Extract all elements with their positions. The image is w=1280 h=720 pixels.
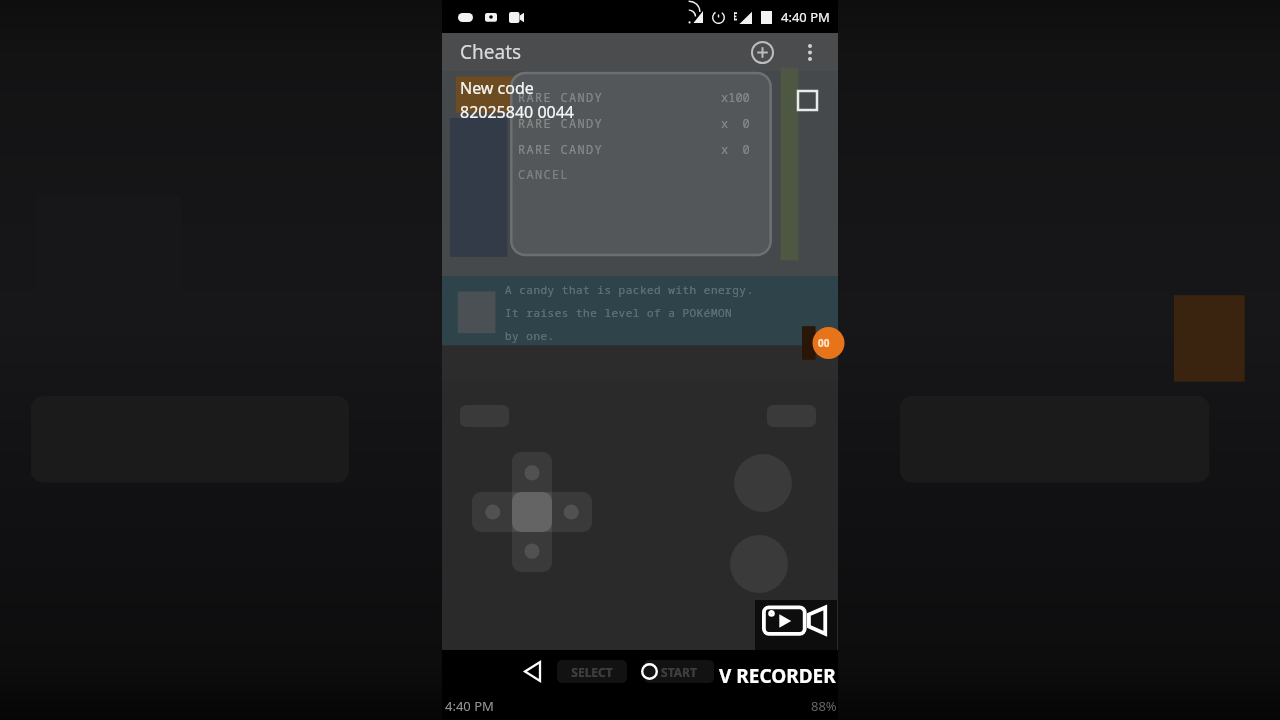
staticText: It raises the level of a POKéMON	[505, 305, 733, 328]
button[interactable]: Add cheat	[746, 36, 778, 68]
button[interactable]: Enable cheat	[790, 83, 824, 117]
staticText: SELECT	[571, 664, 613, 680]
staticText: V RECORDER	[719, 663, 836, 689]
button[interactable]: Back	[512, 651, 552, 691]
staticText: RARE CANDY	[518, 115, 604, 131]
staticText: 88%	[811, 697, 837, 715]
staticText: 82025840 0044	[460, 101, 574, 123]
other: V Recorder	[762, 605, 830, 645]
staticText: RARE CANDY	[518, 89, 604, 105]
button[interactable]: D-pad	[472, 452, 592, 572]
staticText: by one.	[505, 328, 555, 351]
staticText: x100	[721, 89, 750, 105]
staticText: Cheats	[460, 39, 522, 65]
button[interactable]: More options	[794, 36, 826, 68]
button[interactable]: SELECT	[557, 660, 627, 683]
button[interactable]: A button	[734, 454, 792, 512]
staticText: 00	[818, 336, 830, 350]
staticText: x 0	[721, 115, 750, 131]
button[interactable]: New code	[442, 71, 838, 129]
staticText: A candy that is packed with energy.	[505, 282, 754, 305]
staticText: 4:40 PM	[445, 697, 494, 715]
staticText: x 0	[721, 141, 750, 157]
button[interactable]: B button	[730, 535, 788, 593]
staticText: START	[661, 664, 697, 680]
staticText: New code	[460, 77, 534, 99]
button[interactable]: Home	[630, 652, 668, 690]
button[interactable]: START	[644, 660, 714, 683]
staticText: RARE CANDY	[518, 141, 604, 157]
staticText: 4:40 PM	[781, 8, 830, 26]
staticText: CANCEL	[518, 166, 570, 182]
